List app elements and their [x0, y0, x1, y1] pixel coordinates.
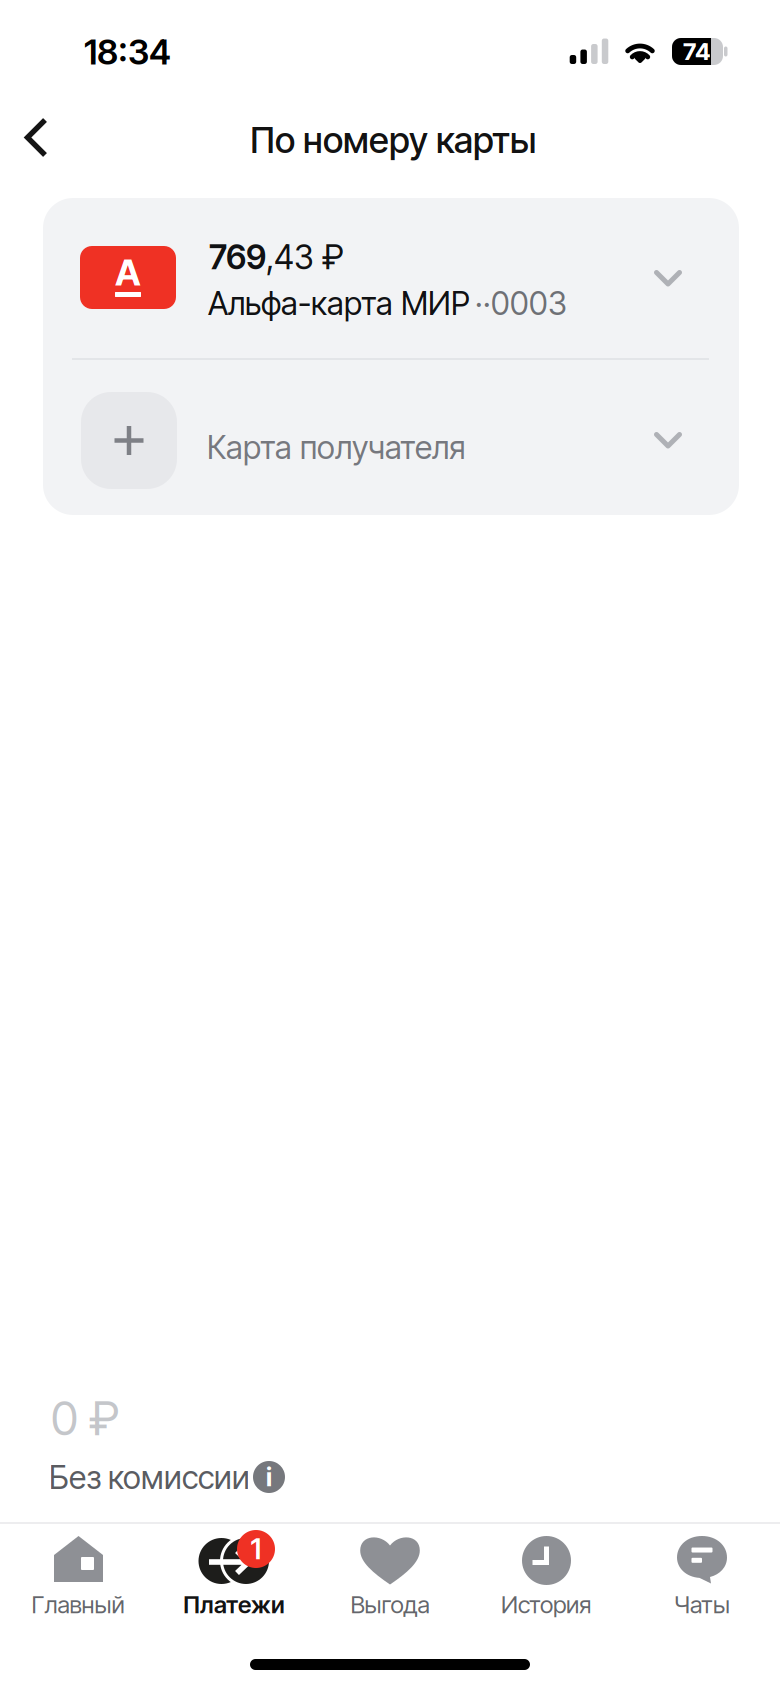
button[interactable]: Карта получателя	[43, 198, 739, 353]
button[interactable]: Информация о комиссии	[251, 1459, 287, 1495]
button[interactable]: 1	[156, 1536, 312, 1628]
staticText: ,43 ₽	[266, 237, 344, 277]
button[interactable]: A	[43, 198, 739, 358]
staticText: История	[501, 1590, 591, 1619]
staticText: 1	[250, 1532, 261, 1566]
staticText: Выгода	[350, 1590, 429, 1619]
staticText: ··0003	[475, 284, 567, 323]
staticText: Без комиссии	[49, 1458, 250, 1497]
button[interactable]: Главный	[0, 1536, 156, 1628]
staticText: 0 ₽	[51, 1390, 119, 1446]
staticText: A	[115, 251, 141, 294]
button[interactable]: Выгода	[312, 1536, 468, 1628]
staticText: Карта получателя	[207, 428, 465, 467]
staticText: Платежи	[183, 1590, 285, 1619]
staticText: Главный	[31, 1590, 124, 1619]
staticText: По номеру карты	[250, 118, 536, 162]
staticText: i	[266, 1462, 272, 1492]
button[interactable]: Чаты	[624, 1536, 780, 1628]
button[interactable]: Назад	[0, 104, 78, 172]
staticText: 769	[209, 237, 266, 277]
staticText: Чаты	[674, 1590, 730, 1619]
staticText: Альфа-карта МИР	[208, 284, 470, 323]
button[interactable]: История	[468, 1536, 624, 1628]
staticText: 18:34	[84, 31, 171, 73]
staticText: 74	[683, 37, 710, 66]
